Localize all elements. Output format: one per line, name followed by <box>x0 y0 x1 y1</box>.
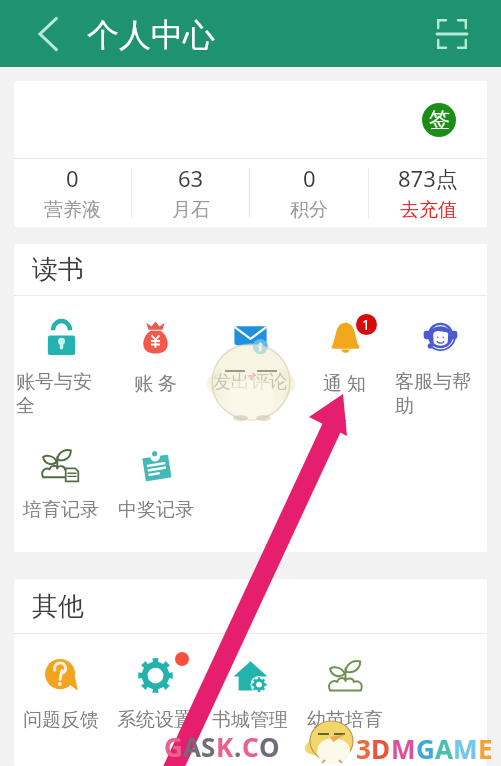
staticText: 1 <box>362 315 371 334</box>
staticText: 873点 <box>398 163 458 193</box>
staticText: 发出评论 <box>212 370 288 394</box>
button[interactable]: 1 <box>297 296 392 396</box>
button[interactable]: 书城管理 <box>202 634 297 732</box>
button[interactable]: 问题反馈 <box>14 634 108 732</box>
staticText: 客服与帮助 <box>395 370 485 418</box>
staticText: K <box>216 729 234 764</box>
button[interactable]: 系统设置 <box>108 634 202 732</box>
staticText: 其他 <box>32 590 84 623</box>
staticText: O <box>259 729 280 764</box>
staticText: 通 知 <box>323 370 366 396</box>
staticText: C <box>242 729 259 764</box>
staticText: 问题反馈 <box>23 708 99 732</box>
staticText: 账号与安全 <box>16 370 106 418</box>
staticText: 签 <box>429 107 450 133</box>
staticText: A <box>435 731 453 766</box>
button[interactable]: 发出评论 <box>202 296 297 394</box>
staticText: 3 <box>356 731 371 766</box>
staticText: 0 <box>66 163 79 193</box>
button[interactable]: 幼苗培育 <box>297 634 392 732</box>
button[interactable]: 培育记录 <box>14 429 108 522</box>
staticText: M <box>453 731 478 766</box>
button[interactable]: Back <box>26 12 70 56</box>
staticText: 读书 <box>32 253 84 286</box>
staticText: 中奖记录 <box>118 498 194 522</box>
staticText: G <box>416 731 435 766</box>
staticText: 个人中心 <box>87 15 215 55</box>
staticText: G <box>164 729 183 764</box>
staticText: 书城管理 <box>212 708 288 732</box>
button[interactable]: 账 务 <box>108 296 202 396</box>
staticText: . <box>234 729 242 764</box>
staticText: E <box>478 731 493 766</box>
button[interactable]: 0 <box>14 159 131 222</box>
staticText: 幼苗培育 <box>307 708 383 732</box>
staticText: S <box>201 729 216 764</box>
button[interactable]: Scan <box>428 10 476 58</box>
button[interactable]: 中奖记录 <box>108 429 203 522</box>
staticText: 月石 <box>172 198 210 222</box>
staticText: M <box>391 731 416 766</box>
button[interactable]: 63 <box>132 159 249 222</box>
staticText: 营养液 <box>44 198 101 222</box>
staticText: 账 务 <box>134 370 177 396</box>
staticText: 积分 <box>290 198 328 222</box>
button[interactable]: 873点 <box>369 159 487 222</box>
staticText: 0 <box>303 163 316 193</box>
staticText: 去充值 <box>400 198 457 222</box>
staticText: 系统设置 <box>117 708 193 732</box>
button[interactable]: 客服与帮助 <box>392 296 487 418</box>
button[interactable]: 账号与安全 <box>14 296 108 418</box>
staticText: 培育记录 <box>23 498 99 522</box>
staticText: D <box>371 731 391 766</box>
staticText: 63 <box>178 163 204 193</box>
button[interactable]: 0 <box>250 159 368 222</box>
button[interactable]: Sign in <box>422 103 456 137</box>
staticText: A <box>183 729 201 764</box>
